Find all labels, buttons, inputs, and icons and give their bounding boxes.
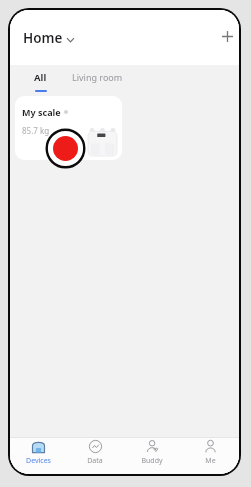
staticText: My scale	[22, 106, 61, 118]
button[interactable]: Buddy	[126, 440, 178, 474]
staticText: Me	[205, 456, 216, 466]
button[interactable]: All	[26, 71, 54, 95]
staticText: Buddy	[141, 456, 163, 466]
button[interactable]: Devices	[12, 440, 64, 474]
button[interactable]: Living room	[72, 71, 138, 93]
staticText: Home	[23, 29, 63, 47]
button[interactable]: Add device	[215, 24, 239, 48]
button[interactable]: Me	[184, 440, 236, 474]
staticText: Devices	[26, 456, 51, 466]
staticText: Data	[87, 456, 103, 466]
button[interactable]: Home	[23, 29, 74, 47]
staticText: All	[34, 71, 47, 84]
button[interactable]: Data	[69, 440, 121, 474]
staticText: Living room	[72, 71, 123, 83]
button[interactable]: My scale	[15, 96, 122, 160]
staticText: 85.7 kg	[22, 125, 50, 136]
